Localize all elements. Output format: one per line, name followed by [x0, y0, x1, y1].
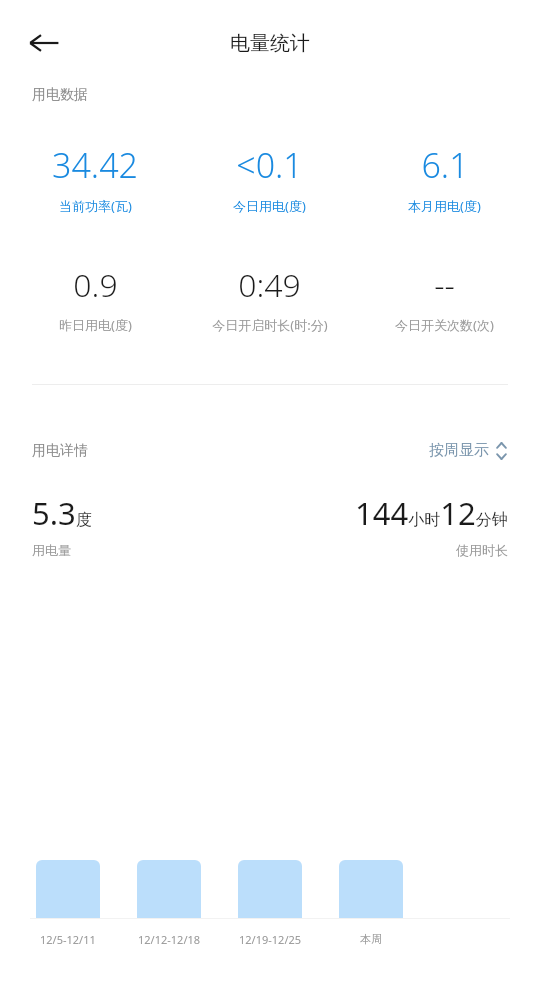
staticText: 34.42 — [52, 142, 138, 188]
staticText: 本月用电(度) — [408, 197, 481, 215]
staticText: 使用时长 — [456, 542, 508, 558]
staticText: 昨日用电(度) — [59, 316, 132, 334]
staticText: 144小时12分钟 — [355, 492, 508, 534]
staticText: 6.1 — [421, 142, 469, 188]
staticText: 0:49 — [238, 263, 301, 307]
staticText: 今日开关次数(次) — [395, 316, 494, 334]
staticText: -- — [434, 263, 455, 307]
staticText: 5.3度 — [32, 492, 92, 534]
staticText: 今日用电(度) — [233, 197, 306, 215]
button[interactable]: 按周显示 — [427, 437, 510, 464]
button[interactable]: Back — [22, 21, 66, 65]
staticText: 0.9 — [73, 263, 118, 307]
staticText: 12/19-12/25 — [239, 932, 302, 947]
staticText: 用电量 — [32, 542, 71, 558]
staticText: 用电详情 — [32, 442, 88, 460]
staticText: 12/5-12/11 — [40, 932, 96, 947]
staticText: 本周 — [360, 932, 382, 946]
staticText: 12/12-12/18 — [138, 932, 201, 947]
staticText: 当前功率(瓦) — [59, 197, 132, 215]
staticText: <0.1 — [236, 142, 303, 188]
staticText: 今日开启时长(时:分) — [212, 316, 328, 334]
staticText: 电量统计 — [230, 31, 310, 56]
staticText: 按周显示 — [429, 441, 489, 460]
staticText: 用电数据 — [32, 86, 88, 104]
